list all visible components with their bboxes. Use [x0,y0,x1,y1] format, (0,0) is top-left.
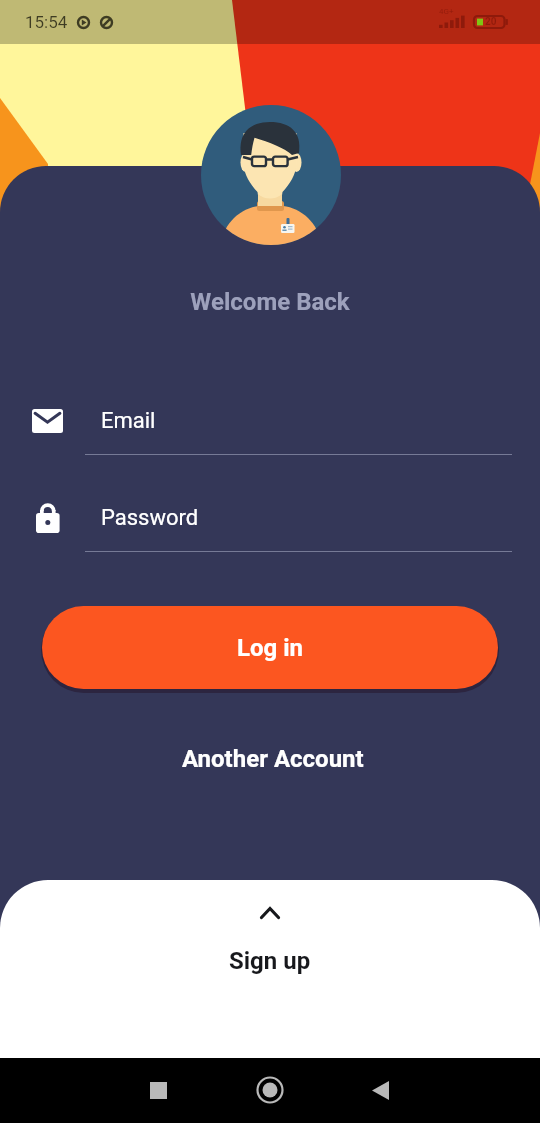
staticText: Log in [237,634,304,662]
other: Expand [259,905,281,921]
staticText: Welcome Back [0,288,540,316]
staticText: Password [101,505,199,531]
staticText: 4G+ [439,7,454,16]
button[interactable]: Log in [42,606,498,689]
button[interactable]: Back [360,1070,400,1110]
staticText: Sign up [229,947,311,975]
staticText: Email [101,408,156,434]
button[interactable]: Email [0,396,540,458]
staticText: Another Account [182,745,364,773]
button[interactable]: Expand [0,880,540,1058]
staticText: 20 [485,16,497,28]
staticText: 15:54 [25,12,68,32]
button[interactable]: Password [0,493,540,555]
button[interactable]: Another Account [3,731,540,787]
button[interactable]: Home [250,1070,290,1110]
button[interactable]: Recent apps [138,1070,178,1110]
